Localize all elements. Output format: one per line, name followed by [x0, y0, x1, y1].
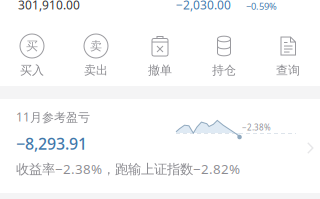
staticText: 撤单 — [148, 63, 172, 78]
staticText: 301,910.00 — [18, 0, 80, 13]
staticText: −2,030.00 — [176, 0, 231, 13]
staticText: 查询 — [276, 63, 300, 78]
button[interactable]: 持仓 — [192, 32, 256, 80]
staticText: 收益率−2.38%，跑输上证指数−2.82% — [16, 160, 240, 178]
staticText: 卖 — [90, 39, 102, 53]
staticText: −0.59% — [246, 0, 277, 12]
button[interactable]: 11月参考盈亏 — [0, 99, 320, 193]
button[interactable]: 卖 — [64, 32, 128, 80]
staticText: −2.38% — [242, 122, 271, 133]
button[interactable]: 撤单 — [128, 32, 192, 80]
staticText: −8,293.91 — [16, 133, 87, 154]
staticText: 买入 — [20, 63, 44, 78]
staticText: 卖出 — [84, 63, 108, 78]
button[interactable]: 查询 — [256, 32, 320, 80]
staticText: 买 — [26, 39, 38, 53]
staticText: 11月参考盈亏 — [16, 109, 90, 125]
staticText: 持仓 — [212, 63, 236, 78]
button[interactable]: 买 — [0, 32, 64, 80]
